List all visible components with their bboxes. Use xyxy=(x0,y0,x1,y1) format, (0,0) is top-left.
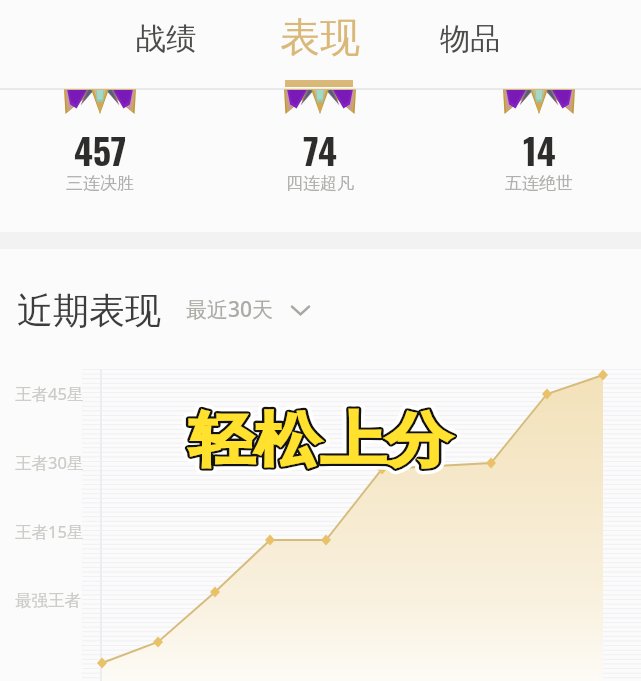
button[interactable]: 物品 xyxy=(410,0,530,80)
staticText: 74 xyxy=(303,123,337,176)
button[interactable]: 14 xyxy=(429,89,641,207)
staticText: 轻松上分 xyxy=(189,404,451,477)
staticText: 14 xyxy=(523,123,556,176)
staticText: 五连绝世 xyxy=(505,173,573,194)
staticText: 王者15星 xyxy=(15,520,84,542)
staticText: 战绩 xyxy=(136,20,196,58)
staticText: 轻松上分 xyxy=(189,404,451,477)
staticText: 轻松上分 xyxy=(189,404,451,477)
button[interactable]: 战绩 xyxy=(106,0,226,80)
staticText: 457 xyxy=(74,123,127,176)
staticText: 最强王者 xyxy=(15,590,81,611)
button[interactable]: 最近30天 xyxy=(186,295,310,324)
button[interactable]: 表现 xyxy=(260,0,380,80)
staticText: 王者45星 xyxy=(15,382,84,404)
staticText: 王者30星 xyxy=(15,451,84,473)
staticText: 近期表现 xyxy=(17,288,161,333)
staticText: 三连决胜 xyxy=(66,173,134,194)
button[interactable]: 457 xyxy=(0,89,210,207)
staticText: 物品 xyxy=(440,20,500,58)
staticText: 四连超凡 xyxy=(286,173,354,194)
button[interactable]: 74 xyxy=(210,89,430,207)
staticText: 表现 xyxy=(280,12,360,62)
staticText: 最近30天 xyxy=(186,295,274,324)
